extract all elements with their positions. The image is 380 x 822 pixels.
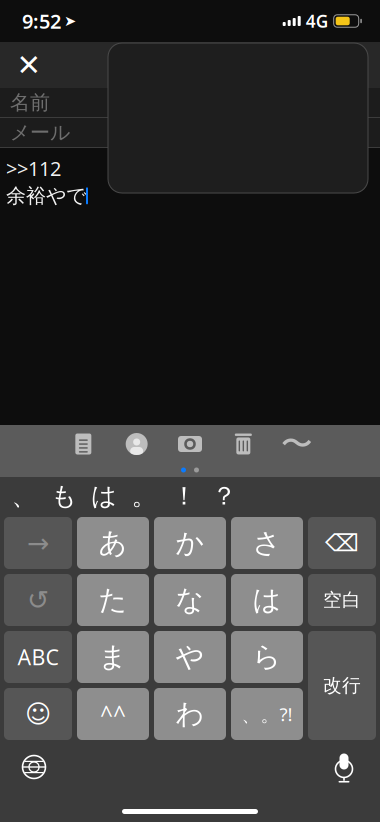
staticText: ？ bbox=[211, 480, 236, 511]
button[interactable]: Contacts bbox=[119, 427, 155, 461]
button[interactable]: Delete bbox=[225, 427, 261, 461]
staticText: 空白 bbox=[323, 588, 361, 611]
staticText: 名前 bbox=[10, 90, 50, 115]
staticText: ^^ bbox=[100, 699, 126, 729]
staticText: 9:52 bbox=[22, 8, 61, 34]
button[interactable]: Scribble bbox=[279, 427, 315, 461]
button[interactable]: ま bbox=[77, 631, 149, 683]
button[interactable]: ！ bbox=[164, 478, 204, 514]
button[interactable]: あ bbox=[77, 517, 149, 569]
staticText: か bbox=[175, 526, 204, 560]
staticText: 。 bbox=[131, 480, 156, 511]
staticText: ↺ bbox=[27, 585, 49, 615]
staticText: メール bbox=[10, 120, 70, 145]
staticText: → bbox=[27, 528, 49, 558]
button[interactable]: は bbox=[84, 478, 124, 514]
button[interactable]: Camera bbox=[172, 427, 208, 461]
staticText: 改行 bbox=[323, 674, 361, 697]
button[interactable]: ？ bbox=[204, 478, 244, 514]
staticText: ☺ bbox=[25, 700, 51, 728]
button[interactable]: た bbox=[77, 574, 149, 626]
button[interactable]: ABC bbox=[4, 631, 72, 683]
button[interactable]: Next keyboard bbox=[12, 747, 56, 787]
button[interactable]: ☺ bbox=[4, 688, 72, 740]
staticText: や bbox=[175, 640, 204, 674]
button[interactable]: 名前 bbox=[0, 88, 380, 117]
button[interactable]: や bbox=[154, 631, 226, 683]
staticText: 〜 bbox=[281, 424, 313, 464]
button[interactable]: ⌫ bbox=[308, 517, 376, 569]
staticText: は bbox=[91, 480, 117, 511]
staticText: あ bbox=[98, 526, 127, 560]
staticText: ⌫ bbox=[325, 529, 359, 557]
staticText: ABC bbox=[17, 643, 58, 671]
button[interactable]: か bbox=[154, 517, 226, 569]
button[interactable]: Close bbox=[0, 42, 58, 88]
button[interactable]: 。 bbox=[124, 478, 164, 514]
staticText: ら bbox=[252, 640, 281, 674]
button[interactable]: な bbox=[154, 574, 226, 626]
staticText: わ bbox=[175, 697, 204, 731]
button[interactable]: も bbox=[44, 478, 84, 514]
staticText: 、。?! bbox=[241, 702, 292, 726]
button[interactable]: 改行 bbox=[308, 631, 376, 740]
staticText: た bbox=[98, 583, 127, 617]
button[interactable]: は bbox=[231, 574, 303, 626]
staticText: 、 bbox=[11, 480, 36, 511]
staticText: 4G bbox=[306, 9, 329, 32]
button[interactable]: 、 bbox=[4, 478, 44, 514]
staticText: ！ bbox=[171, 480, 196, 511]
staticText: ま bbox=[98, 640, 127, 674]
button[interactable]: ら bbox=[231, 631, 303, 683]
button[interactable]: 空白 bbox=[308, 574, 376, 626]
button[interactable]: メール bbox=[0, 118, 380, 147]
button[interactable]: ↺ bbox=[4, 574, 72, 626]
staticText: は bbox=[252, 583, 281, 617]
button[interactable]: Paste bbox=[65, 427, 101, 461]
staticText: な bbox=[175, 583, 204, 617]
button[interactable]: さ bbox=[231, 517, 303, 569]
button[interactable]: ^^ bbox=[77, 688, 149, 740]
button[interactable]: わ bbox=[154, 688, 226, 740]
staticText: 余裕やで bbox=[6, 184, 86, 208]
staticText: も bbox=[51, 480, 77, 511]
staticText: ✕ bbox=[16, 48, 41, 82]
staticText: >>112 bbox=[6, 155, 61, 182]
staticText: さ bbox=[252, 526, 281, 560]
button[interactable]: → bbox=[4, 517, 72, 569]
staticText: ➤ bbox=[64, 13, 76, 29]
button[interactable]: 、。?! bbox=[231, 688, 303, 740]
button[interactable]: Dictation bbox=[322, 747, 366, 787]
